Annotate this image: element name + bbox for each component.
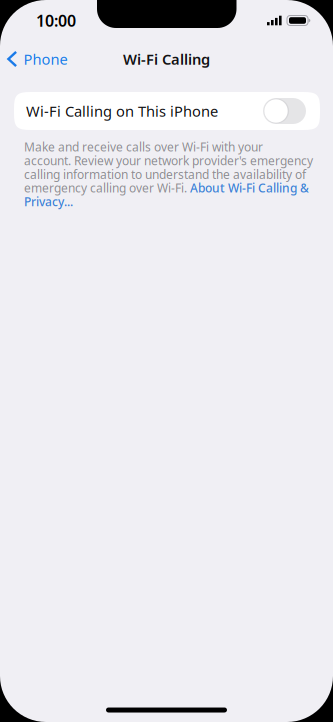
- staticText: Privacy...: [24, 193, 73, 209]
- staticText: Make and receive calls over Wi-Fi with y…: [24, 139, 263, 155]
- button[interactable]: Privacy...: [24, 193, 73, 209]
- staticText: calling information to understand the av…: [24, 166, 306, 182]
- staticText: emergency calling over Wi-Fi.: [24, 180, 190, 196]
- staticText: Wi-Fi Calling: [123, 49, 210, 69]
- staticText: About Wi-Fi Calling &: [190, 180, 309, 196]
- staticText: 10:00: [36, 10, 76, 31]
- staticText: Phone: [23, 49, 67, 69]
- button[interactable]: About Wi-Fi Calling &: [190, 180, 309, 196]
- staticText: Wi-Fi Calling on This iPhone: [26, 101, 218, 121]
- button[interactable]: Wi-Fi Calling on This iPhone: [14, 92, 320, 130]
- button[interactable]: Phone: [0, 41, 73, 77]
- staticText: account. Review your network provider's …: [24, 153, 313, 168]
